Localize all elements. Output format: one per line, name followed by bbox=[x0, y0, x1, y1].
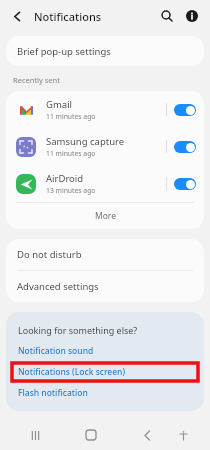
staticText: Samsung capture bbox=[46, 135, 125, 148]
button[interactable]: Back bbox=[8, 7, 26, 25]
staticText: Notification sound bbox=[18, 345, 94, 357]
button[interactable]: Gmail bbox=[6, 91, 204, 128]
button[interactable]: Accessibility bbox=[172, 424, 194, 446]
staticText: 11 minutes ago bbox=[46, 112, 96, 121]
button[interactable]: Samsung capture bbox=[6, 128, 204, 165]
button[interactable]: Home bbox=[80, 424, 102, 446]
staticText: Advanced settings bbox=[17, 280, 99, 293]
button[interactable]: Search bbox=[157, 6, 177, 26]
staticText: AirDroid bbox=[46, 172, 84, 185]
button[interactable]: More information bbox=[182, 6, 202, 26]
button[interactable]: AirDroid notification toggle bbox=[174, 178, 196, 190]
staticText: Notifications (Lock screen) bbox=[18, 366, 126, 378]
button[interactable]: Back bbox=[136, 424, 158, 446]
button[interactable]: Recent apps bbox=[24, 424, 46, 446]
staticText: Flash notification bbox=[18, 387, 88, 399]
button[interactable]: Gmail notification toggle bbox=[174, 104, 196, 116]
staticText: Looking for something else? bbox=[18, 324, 138, 336]
staticText: More bbox=[95, 210, 116, 222]
staticText: Recently sent bbox=[13, 75, 60, 85]
button[interactable]: Samsung capture notification toggle bbox=[174, 141, 196, 153]
button[interactable]: More bbox=[6, 203, 204, 229]
button[interactable]: Flash notification bbox=[6, 387, 204, 399]
staticText: Do not disturb bbox=[17, 248, 82, 261]
button[interactable]: Notification sound bbox=[6, 345, 204, 357]
button[interactable]: Brief pop-up settings bbox=[6, 36, 204, 66]
button[interactable]: Do not disturb bbox=[6, 239, 204, 270]
staticText: Brief pop-up settings bbox=[17, 45, 111, 58]
staticText: Gmail bbox=[46, 98, 73, 111]
button[interactable]: Notifications (Lock screen) bbox=[12, 363, 198, 381]
button[interactable]: AirDroid bbox=[6, 165, 204, 202]
button[interactable]: Advanced settings bbox=[6, 271, 204, 302]
staticText: 13 minutes ago bbox=[46, 186, 96, 195]
staticText: Notifications bbox=[34, 9, 102, 24]
staticText: 11 minutes ago bbox=[46, 149, 96, 158]
